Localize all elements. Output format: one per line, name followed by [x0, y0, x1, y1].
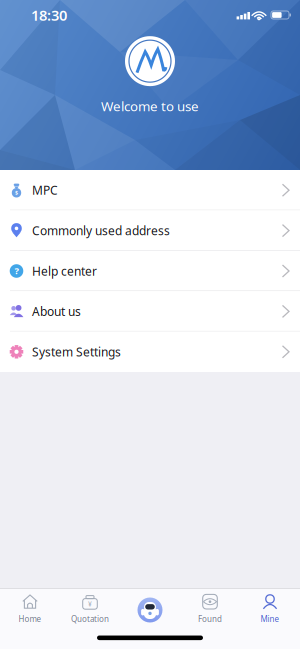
button[interactable]: ¥ — [60, 589, 120, 636]
button[interactable]: About us — [0, 291, 300, 332]
staticText: ? — [14, 264, 18, 277]
button[interactable]: Commonly used address — [0, 210, 300, 251]
staticText: Commonly used address — [32, 223, 170, 238]
staticText: Quotation — [71, 614, 109, 624]
staticText: Mine — [260, 614, 279, 624]
staticText: Help center — [32, 263, 97, 279]
staticText: Welcome to use — [101, 97, 199, 115]
staticText: Found — [198, 614, 222, 624]
staticText: ¥ — [88, 599, 92, 608]
button[interactable]: $ — [0, 170, 300, 210]
button[interactable]: Mine — [240, 589, 300, 636]
staticText: Home — [18, 614, 41, 624]
staticText: System Settings — [32, 344, 121, 360]
button[interactable]: System Settings — [0, 332, 300, 372]
button[interactable]: ? — [0, 251, 300, 291]
button[interactable]: Home — [0, 589, 60, 636]
button[interactable]: Assistant — [120, 589, 180, 636]
staticText: 18:30 — [31, 5, 67, 25]
staticText: $ — [15, 189, 18, 196]
staticText: About us — [32, 303, 81, 319]
button[interactable]: Found — [180, 589, 240, 636]
staticText: MPC — [32, 182, 58, 198]
